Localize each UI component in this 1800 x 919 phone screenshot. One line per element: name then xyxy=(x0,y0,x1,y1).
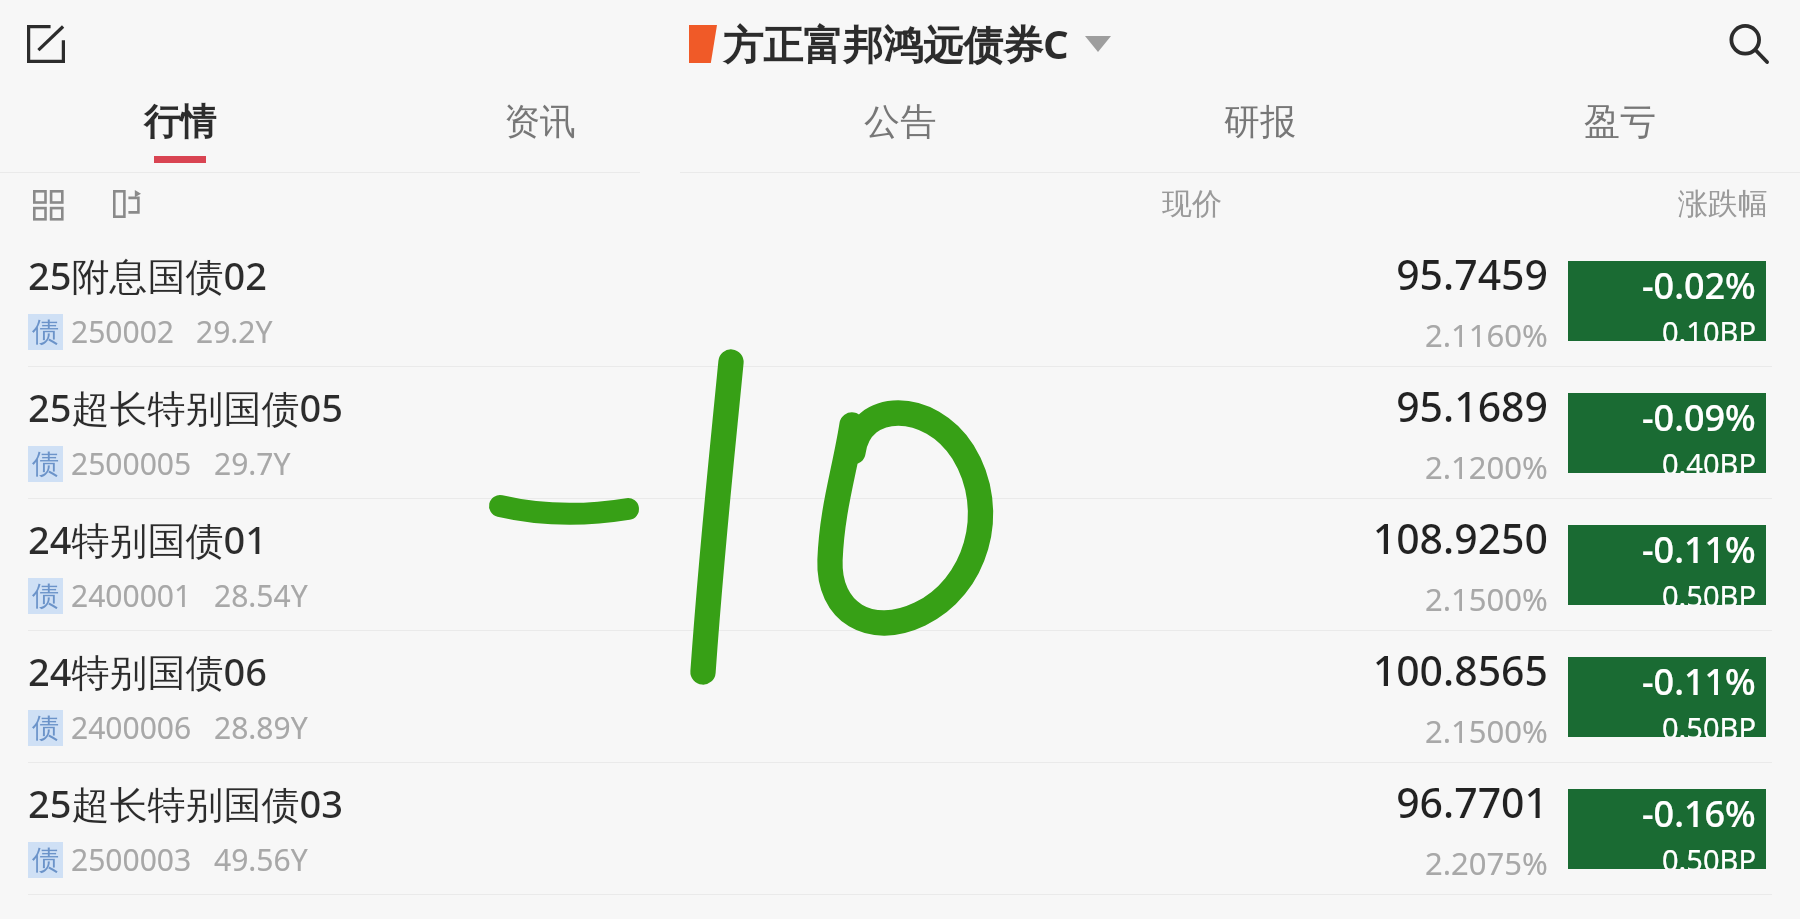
staticText: 2500003 xyxy=(71,839,192,880)
staticText: 0.50BP xyxy=(1662,708,1756,737)
button[interactable]: 研报 xyxy=(1080,87,1440,173)
staticText: -0.11% xyxy=(1642,657,1756,706)
staticText: 2400001 xyxy=(71,575,192,616)
button[interactable]: 25附息国债02 xyxy=(0,235,1800,366)
button[interactable]: -0.16% xyxy=(1568,789,1766,869)
staticText: 2400006 xyxy=(71,707,192,748)
button[interactable]: Search xyxy=(1718,13,1780,75)
staticText: 债 xyxy=(32,579,59,613)
staticText: 2.2075% xyxy=(1425,842,1548,884)
staticText: 250002 xyxy=(71,311,174,352)
staticText: 债 xyxy=(32,843,59,877)
staticText: 95.1689 xyxy=(1396,378,1548,434)
button[interactable]: Grid view xyxy=(24,181,70,227)
button[interactable]: -0.11% xyxy=(1568,525,1766,605)
staticText: 25附息国债02 xyxy=(28,249,267,301)
staticText: 债 xyxy=(32,315,59,349)
button[interactable]: 公告 xyxy=(720,87,1080,173)
staticText: 96.7701 xyxy=(1396,774,1548,830)
staticText: 25超长特别国债03 xyxy=(28,777,343,829)
staticText: 0.50BP xyxy=(1662,840,1756,869)
button[interactable]: -0.09% xyxy=(1568,393,1766,473)
staticText: 2.1160% xyxy=(1425,314,1548,356)
staticText: -0.16% xyxy=(1642,789,1756,838)
staticText: 2.1500% xyxy=(1425,578,1548,620)
staticText: 0.10BP xyxy=(1662,312,1756,341)
staticText: 公告 xyxy=(864,99,936,144)
staticText: 涨跌幅 xyxy=(1678,185,1768,223)
staticText: 49.56Y xyxy=(214,839,308,880)
staticText: -0.09% xyxy=(1642,393,1756,442)
staticText: 29.2Y xyxy=(196,311,273,352)
button[interactable]: 24特别国债06 xyxy=(0,631,1800,762)
staticText: 资讯 xyxy=(504,99,576,144)
button[interactable]: 25超长特别国债05 xyxy=(0,367,1800,498)
button[interactable]: 资讯 xyxy=(360,87,720,173)
staticText: 盈亏 xyxy=(1584,99,1656,144)
button[interactable]: -0.02% xyxy=(1568,261,1766,341)
staticText: 行情 xyxy=(144,99,216,144)
staticText: 现价 xyxy=(1162,185,1222,223)
staticText: 24特别国债01 xyxy=(28,513,267,565)
staticText: 24特别国债06 xyxy=(28,645,267,697)
staticText: 108.9250 xyxy=(1372,510,1548,566)
button[interactable]: 盈亏 xyxy=(1440,87,1800,173)
staticText: -0.02% xyxy=(1642,261,1756,310)
staticText: 研报 xyxy=(1224,99,1296,144)
button[interactable]: 行情 xyxy=(0,87,360,173)
staticText: 25超长特别国债05 xyxy=(28,381,343,433)
staticText: -0.11% xyxy=(1642,525,1756,574)
staticText: 方正富邦鸿远债券C xyxy=(723,16,1069,71)
staticText: 0.50BP xyxy=(1662,576,1756,605)
staticText: 100.8565 xyxy=(1372,642,1548,698)
button[interactable]: Sort xyxy=(104,181,150,227)
staticText: 0.40BP xyxy=(1662,444,1756,473)
staticText: 28.89Y xyxy=(214,707,308,748)
staticText: 2.1500% xyxy=(1425,710,1548,752)
button[interactable]: 24特别国债01 xyxy=(0,499,1800,630)
button[interactable]: 方正富邦鸿远债券C xyxy=(689,16,1111,71)
staticText: 债 xyxy=(32,447,59,481)
button[interactable]: -0.11% xyxy=(1568,657,1766,737)
staticText: 95.7459 xyxy=(1396,246,1548,302)
staticText: 2500005 xyxy=(71,443,192,484)
button[interactable]: 25超长特别国债03 xyxy=(0,763,1800,894)
staticText: 债 xyxy=(32,711,59,745)
staticText: 28.54Y xyxy=(214,575,308,616)
staticText: 29.7Y xyxy=(214,443,291,484)
button[interactable]: Edit xyxy=(18,16,74,72)
staticText: 2.1200% xyxy=(1425,446,1548,488)
